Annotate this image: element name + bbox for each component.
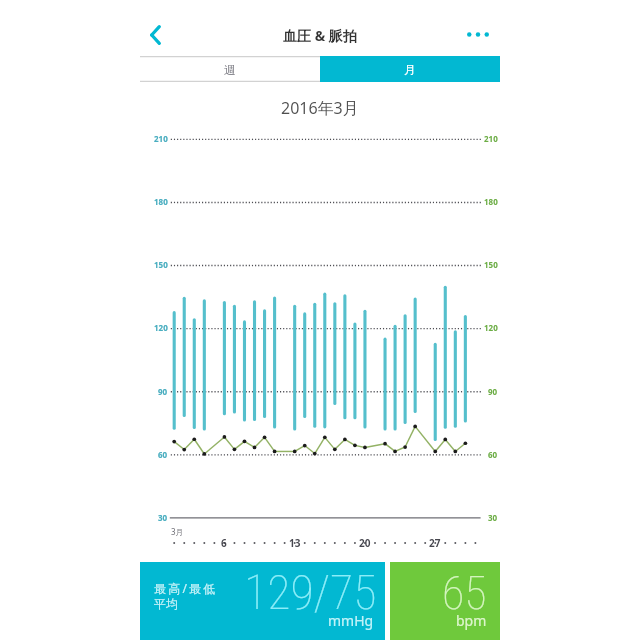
staticText: 60	[488, 449, 498, 460]
staticText: mmHg	[328, 611, 374, 630]
button[interactable]: 週	[140, 56, 320, 82]
staticText: 150	[484, 259, 498, 270]
staticText: 210	[154, 133, 168, 144]
staticText: 平均	[154, 596, 178, 611]
staticText: 月	[404, 62, 416, 77]
staticText: 27	[429, 536, 441, 550]
staticText: 最高/最低	[154, 580, 218, 596]
staticText: 120	[484, 322, 498, 333]
staticText: 90	[158, 386, 168, 397]
staticText: 150	[154, 259, 168, 270]
button[interactable]: More options	[458, 14, 498, 54]
staticText: bpm	[456, 611, 487, 630]
staticText: 血圧 & 脈拍	[283, 26, 357, 45]
staticText: 180	[154, 196, 168, 207]
staticText: 20	[359, 536, 371, 550]
staticText: 13	[289, 536, 301, 550]
staticText: 210	[484, 133, 498, 144]
staticText: 3月	[171, 526, 184, 537]
staticText: 90	[488, 386, 498, 397]
staticText: 120	[154, 322, 168, 333]
staticText: 129/75	[244, 564, 377, 620]
button[interactable]: 最高/最低	[140, 562, 385, 640]
button[interactable]: 月	[320, 56, 500, 82]
staticText: 180	[484, 196, 498, 207]
staticText: 65	[442, 566, 487, 620]
staticText: 6	[221, 536, 227, 550]
staticText: 30	[158, 512, 168, 523]
staticText: 30	[488, 512, 498, 523]
staticText: 60	[158, 449, 168, 460]
button[interactable]: Back	[135, 15, 175, 55]
button[interactable]: 65	[390, 562, 500, 640]
staticText: 週	[224, 62, 236, 77]
staticText: 2016年3月	[281, 97, 359, 119]
